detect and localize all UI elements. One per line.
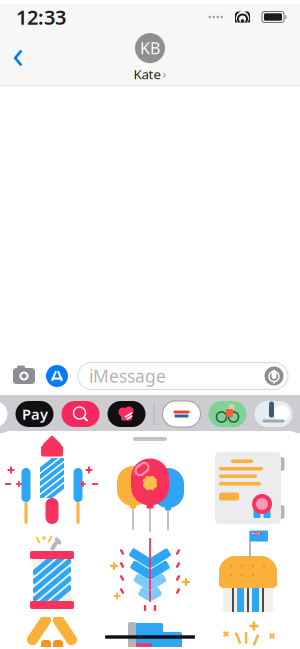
- button[interactable]: Sticker: [6, 617, 98, 649]
- button[interactable]: Fireworks sticker: [6, 445, 98, 531]
- button[interactable]: Apps: [45, 364, 69, 388]
- staticText: 12:33: [16, 4, 66, 30]
- staticText: Pay: [22, 404, 48, 424]
- button[interactable]: Sticker: [104, 617, 196, 649]
- button[interactable]: Surf stickers: [254, 401, 292, 427]
- button[interactable]: Apple Pay: [15, 401, 53, 427]
- button[interactable]: Cupcake sticker: [202, 531, 294, 617]
- button[interactable]: Certificate sticker: [202, 445, 294, 531]
- button[interactable]: iMessage text field: [78, 362, 288, 389]
- button[interactable]: Bike stickers: [208, 401, 246, 427]
- button[interactable]: Back: [0, 39, 26, 77]
- button[interactable]: Blue firework sticker: [104, 531, 196, 617]
- staticText: iMessage: [89, 364, 166, 387]
- staticText: ›: [162, 66, 166, 82]
- button[interactable]: Sticker: [202, 617, 294, 649]
- button[interactable]: Photos: [0, 401, 7, 427]
- button[interactable]: Images: [61, 401, 99, 427]
- button[interactable]: Firecracker sticker: [6, 531, 98, 617]
- button[interactable]: Badge stickers: [162, 401, 200, 427]
- button[interactable]: Music: [107, 401, 145, 427]
- button[interactable]: Camera: [12, 365, 36, 387]
- staticText: KB: [140, 37, 160, 59]
- button[interactable]: Balloons sticker: [104, 445, 196, 531]
- staticText: Kate: [133, 65, 161, 83]
